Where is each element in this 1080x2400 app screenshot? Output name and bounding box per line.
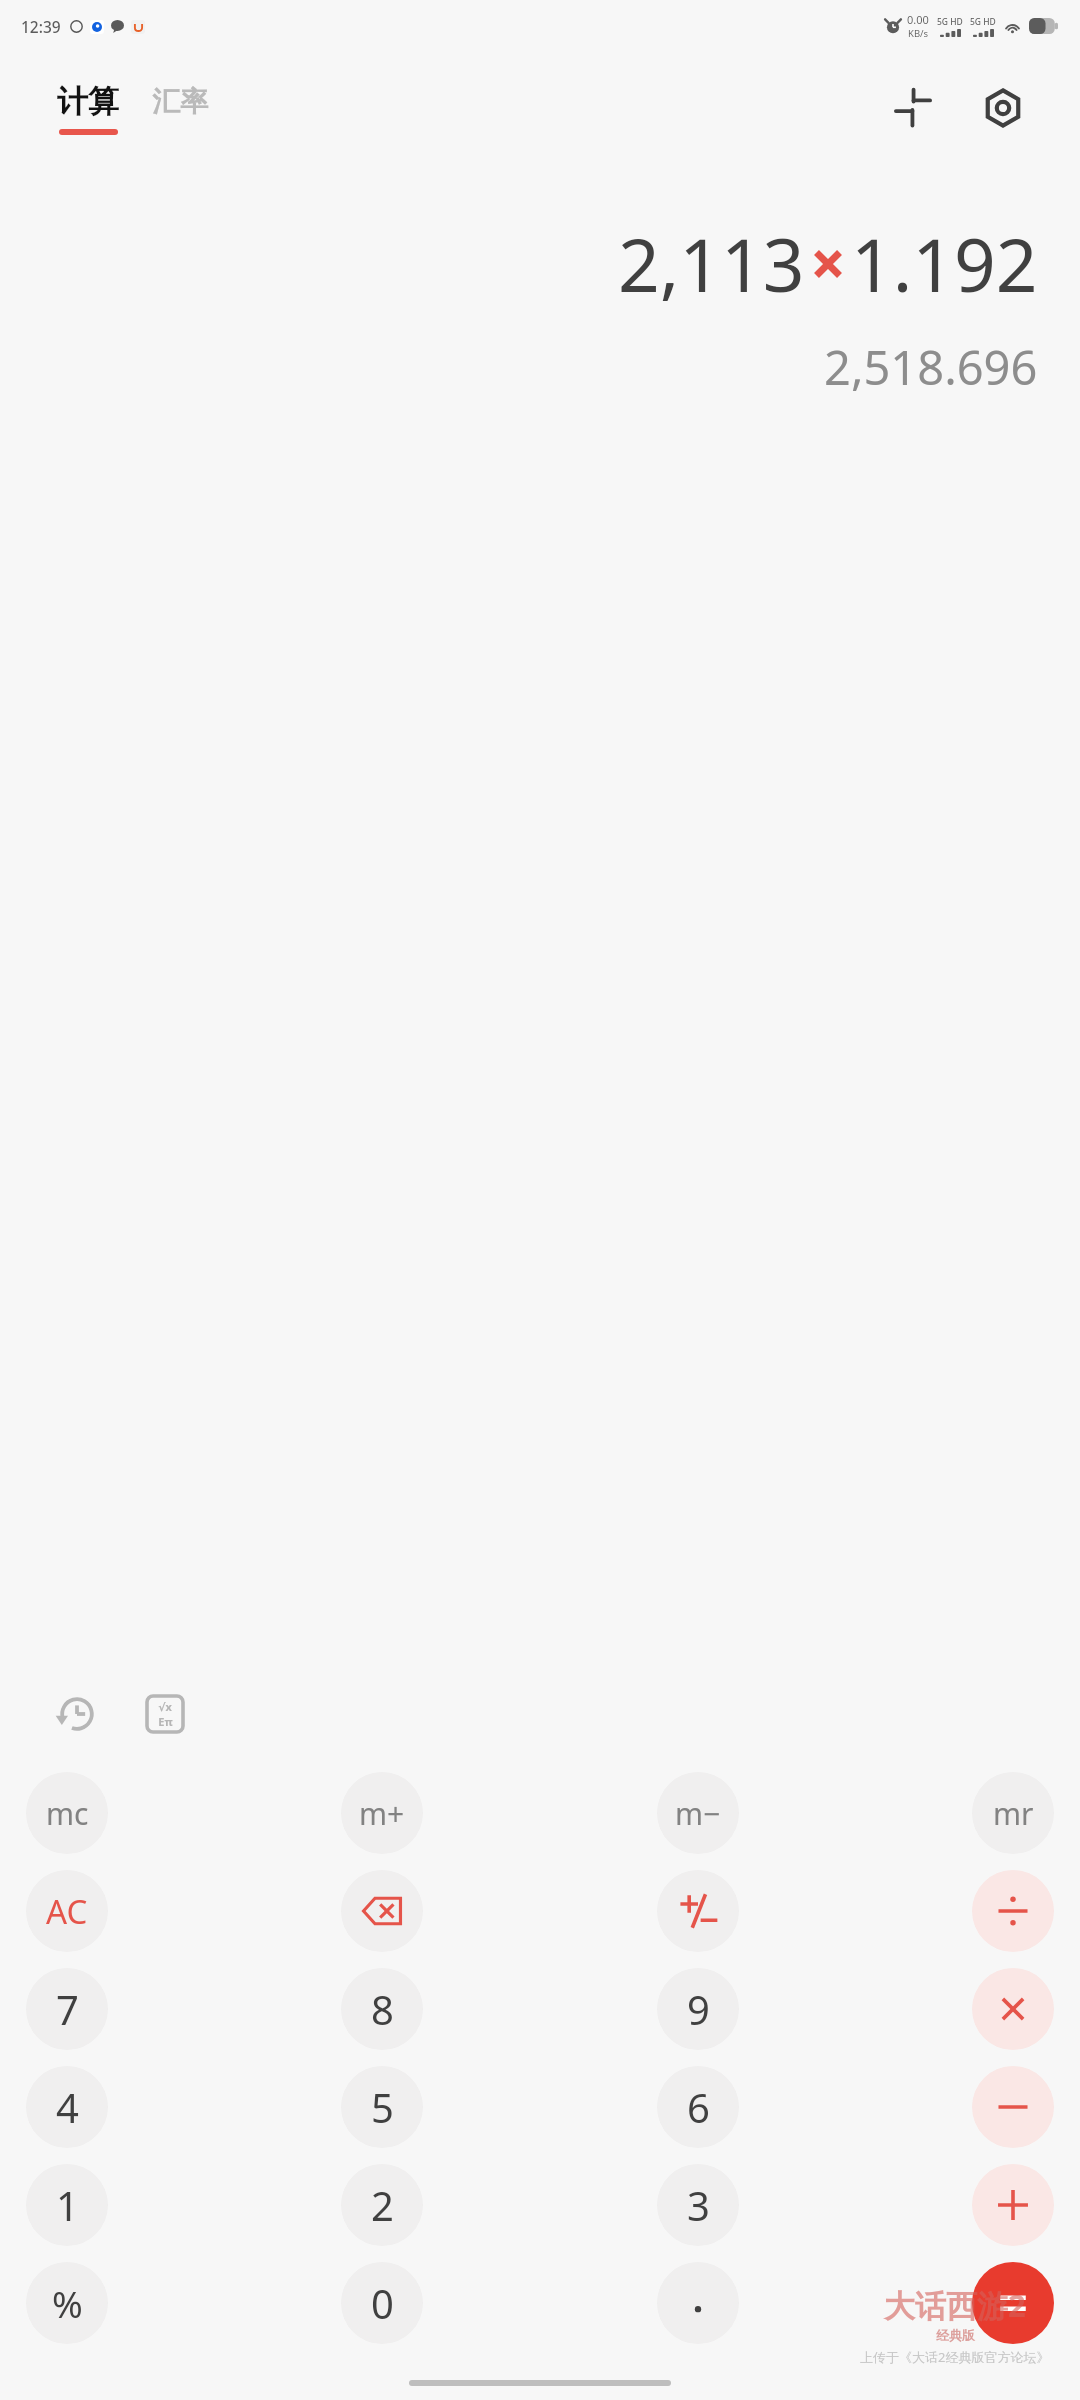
button[interactable]: m+ [341, 1772, 423, 1854]
button[interactable]: 2 [341, 2164, 423, 2246]
staticText: 5 [371, 2080, 394, 2134]
staticText: 8 [371, 1982, 394, 2036]
button[interactable]: Minus [972, 2066, 1054, 2148]
button[interactable]: 4 [26, 2066, 108, 2148]
staticText: √x [158, 1699, 172, 1714]
staticText: 5G HD [937, 16, 963, 28]
button[interactable]: Scientific mode [133, 1682, 197, 1746]
staticText: 汇率 [152, 84, 208, 119]
button[interactable]: Equals [972, 2262, 1054, 2344]
button[interactable]: 7 [26, 1968, 108, 2050]
button[interactable]: m− [657, 1772, 739, 1854]
button[interactable]: 5 [341, 2066, 423, 2148]
staticText: KB/s [908, 27, 929, 40]
staticText: 1 [56, 2178, 79, 2232]
staticText: 2,113 [618, 214, 805, 313]
button[interactable]: % [26, 2262, 108, 2344]
staticText: 9 [687, 1982, 710, 2036]
staticText: 计算 [57, 82, 119, 121]
staticText: 经典版 [936, 2327, 975, 2343]
button[interactable]: AC [26, 1870, 108, 1952]
staticText: 3 [687, 2178, 710, 2232]
button[interactable]: Backspace [341, 1870, 423, 1952]
button[interactable]: Settings [970, 75, 1036, 141]
button[interactable]: Multiply [972, 1968, 1054, 2050]
button[interactable]: 1 [26, 2164, 108, 2246]
staticText: m− [675, 1793, 721, 1834]
staticText: m+ [359, 1793, 405, 1834]
staticText: mr [993, 1793, 1034, 1834]
staticText: % [52, 2278, 83, 2328]
staticText: 12:39 [21, 16, 61, 37]
button[interactable]: Divide [972, 1870, 1054, 1952]
button[interactable]: 3 [657, 2164, 739, 2246]
button[interactable]: 6 [657, 2066, 739, 2148]
button[interactable]: 8 [341, 1968, 423, 2050]
staticText: 2 [371, 2178, 394, 2232]
button[interactable]: Plus [972, 2164, 1054, 2246]
staticText: 2,518.696 [824, 335, 1038, 399]
staticText: 6 [687, 2080, 710, 2134]
staticText: 0.00 [907, 12, 929, 27]
staticText: 7 [56, 1982, 79, 2036]
staticText: 4 [56, 2080, 79, 2134]
staticText: AC [46, 1889, 88, 1934]
staticText: 1.192 [851, 214, 1038, 313]
button[interactable]: History [45, 1682, 109, 1746]
staticText: mc [46, 1793, 89, 1834]
button[interactable]: mr [972, 1772, 1054, 1854]
staticText: 大话西游2 [884, 2284, 1026, 2326]
staticText: 5G HD [970, 16, 996, 28]
button[interactable]: 计算 [57, 82, 119, 135]
staticText: 上传于《大话2经典版官方论坛》 [860, 2348, 1050, 2366]
staticText: 0 [371, 2276, 394, 2330]
staticText: Eπ [158, 1714, 173, 1729]
button[interactable]: Toggle sign [657, 1870, 739, 1952]
button[interactable]: mc [26, 1772, 108, 1854]
button[interactable]: 0 [341, 2262, 423, 2344]
button[interactable]: 9 [657, 1968, 739, 2050]
button[interactable]: Collapse [880, 75, 946, 141]
button[interactable]: Decimal point [657, 2262, 739, 2344]
button[interactable]: 汇率 [152, 84, 208, 135]
